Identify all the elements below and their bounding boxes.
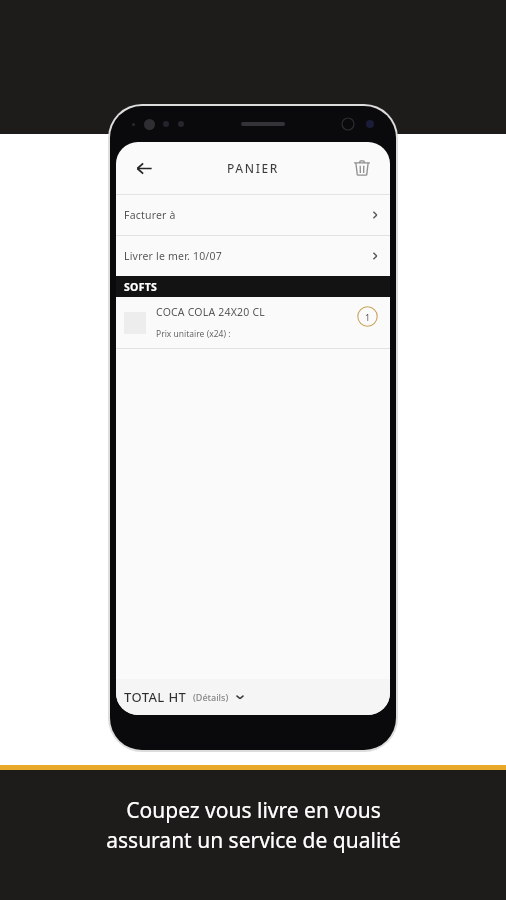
staticText: Coupez vous livre en vous assurant un se… [106,796,401,854]
staticText: TOTAL HT [124,688,187,706]
staticText: 1 [365,311,371,323]
staticText: Facturer à [124,208,176,222]
staticText: SOFTS [124,280,158,294]
button[interactable]: Facturer à [116,195,390,235]
button[interactable]: 1 [357,306,378,327]
staticText: Prix unitaire (x24) : [156,328,231,340]
button[interactable]: TOTAL HT [116,679,390,715]
staticText: Livrer le mer. 10/07 [124,249,222,263]
button[interactable]: Back [124,148,164,188]
staticText: PANIER [227,160,280,176]
button[interactable]: Delete cart [342,148,382,188]
staticText: (Détails) [193,691,229,703]
button[interactable]: Livrer le mer. 10/07 [116,236,390,276]
staticText: COCA COLA 24X20 CL [156,305,265,319]
button[interactable]: COCA COLA 24X20 CL [116,297,390,348]
